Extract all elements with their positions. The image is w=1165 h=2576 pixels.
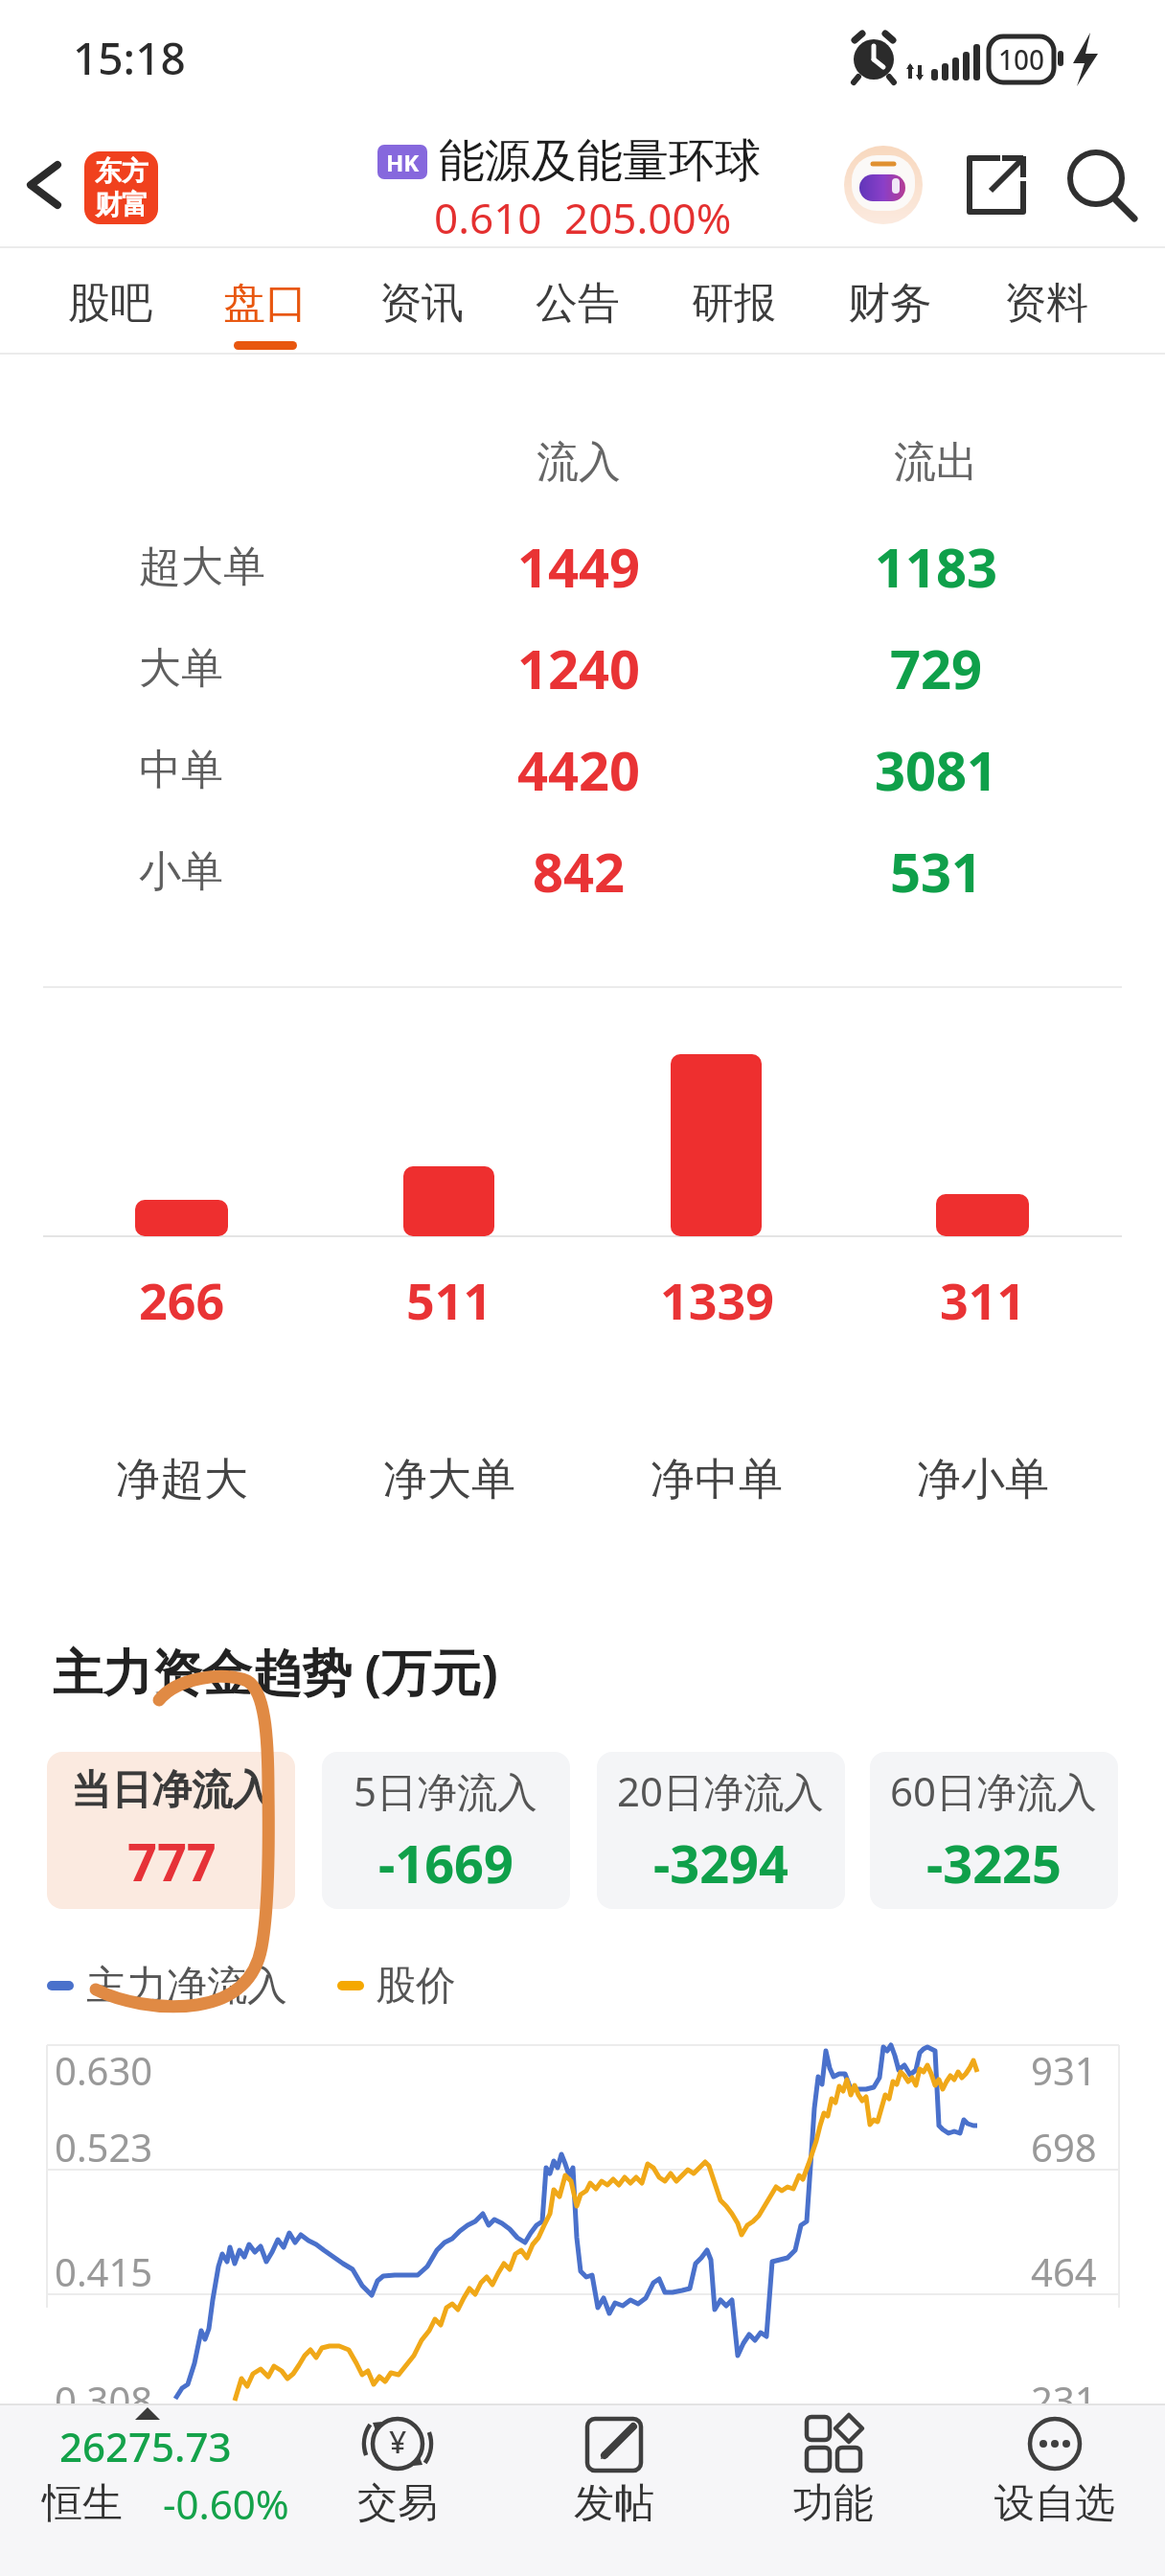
staticText: 功能	[793, 2478, 874, 2529]
staticText: 财富	[95, 188, 148, 221]
button[interactable]: 60日净流入	[870, 1752, 1118, 1909]
staticText: 股吧	[68, 277, 152, 330]
staticText: 主力净流入	[86, 1961, 287, 2012]
staticText: -3225	[926, 1828, 1062, 1898]
staticText: 60日净流入	[890, 1763, 1098, 1818]
staticText: 698	[1031, 2121, 1097, 2173]
button[interactable]: 20日净流入	[597, 1752, 845, 1909]
staticText: 流出	[894, 436, 978, 489]
staticText: -3294	[653, 1828, 788, 1898]
staticText: 311	[940, 1266, 1026, 1334]
button[interactable]	[978, 2407, 1131, 2532]
button[interactable]: 资料	[979, 257, 1113, 349]
staticText: 净小单	[917, 1452, 1049, 1507]
staticText: 发帖	[574, 2478, 654, 2529]
staticText: 0.523	[55, 2121, 153, 2173]
staticText: 531	[890, 835, 983, 908]
staticText: 1240	[517, 632, 641, 704]
staticText: 净超大	[116, 1452, 248, 1507]
staticText: 729	[890, 632, 983, 704]
button[interactable]	[10, 144, 77, 230]
staticText: 842	[533, 835, 626, 908]
button[interactable]: 5日净流入	[322, 1752, 570, 1909]
staticText: 15:18	[73, 28, 186, 88]
button[interactable]	[537, 2407, 691, 2532]
staticText: 公告	[536, 277, 620, 330]
staticText: 资讯	[379, 277, 464, 330]
button[interactable]	[1062, 144, 1144, 226]
button[interactable]	[321, 2407, 474, 2532]
staticText: 1339	[660, 1266, 774, 1334]
staticText: 205.00%	[564, 189, 732, 246]
button[interactable]: 股吧	[43, 257, 177, 349]
staticText: 0.630	[55, 2044, 153, 2096]
staticText: 小单	[139, 845, 223, 898]
staticText: 464	[1031, 2245, 1097, 2297]
staticText: 流入	[537, 436, 621, 489]
staticText: 研报	[692, 277, 776, 330]
staticText: 100	[998, 41, 1045, 78]
button[interactable]	[958, 149, 1031, 221]
staticText: 恒生	[42, 2478, 123, 2529]
staticText: 设自选	[994, 2478, 1115, 2529]
button[interactable]: 东方	[84, 151, 158, 224]
staticText: 0.610	[434, 189, 542, 246]
staticText: 能源及能量环球	[439, 132, 761, 190]
staticText: 4420	[517, 733, 641, 806]
staticText: 净中单	[651, 1452, 783, 1507]
staticText: 股价	[376, 1961, 456, 2012]
staticText: -0.60%	[163, 2476, 289, 2531]
staticText: 5日净流入	[354, 1763, 538, 1818]
staticText: 交易	[357, 2478, 438, 2529]
staticText: 中单	[139, 744, 223, 796]
staticText: 231	[1031, 2374, 1097, 2426]
staticText: 净大单	[383, 1452, 515, 1507]
staticText: HK	[386, 147, 420, 178]
staticText: 0.308	[55, 2374, 153, 2426]
staticText: 财务	[848, 277, 932, 330]
staticText: 当日净流入	[71, 1765, 272, 1816]
button[interactable]	[757, 2407, 910, 2532]
button[interactable]: 研报	[667, 257, 801, 349]
staticText: 1449	[517, 530, 641, 603]
staticText: 0.415	[55, 2245, 153, 2297]
staticText: 主力资金趋势 (万元)	[53, 1637, 498, 1705]
staticText: 超大单	[139, 540, 265, 593]
button[interactable]: 公告	[511, 257, 645, 349]
button[interactable]: 盘口	[198, 257, 332, 349]
staticText: 26275.73	[59, 2419, 232, 2473]
staticText: 777	[127, 1826, 217, 1897]
button[interactable]: 资讯	[354, 257, 489, 349]
button[interactable]	[844, 146, 923, 224]
staticText: 资料	[1004, 277, 1088, 330]
staticText: 266	[139, 1266, 225, 1334]
staticText: 东方	[95, 154, 148, 188]
staticText: 大单	[139, 642, 223, 695]
staticText: 3081	[875, 733, 998, 806]
staticText: 511	[406, 1266, 492, 1334]
staticText: 20日净流入	[617, 1763, 825, 1818]
button[interactable]: 财务	[823, 257, 957, 349]
staticText: 1183	[875, 530, 998, 603]
staticText: 盘口	[223, 277, 308, 330]
staticText: -1669	[378, 1828, 514, 1898]
button[interactable]: 当日净流入	[47, 1752, 295, 1909]
staticText: 931	[1031, 2044, 1097, 2096]
staticText: ¥	[389, 2421, 407, 2463]
button[interactable]	[19, 2410, 307, 2554]
